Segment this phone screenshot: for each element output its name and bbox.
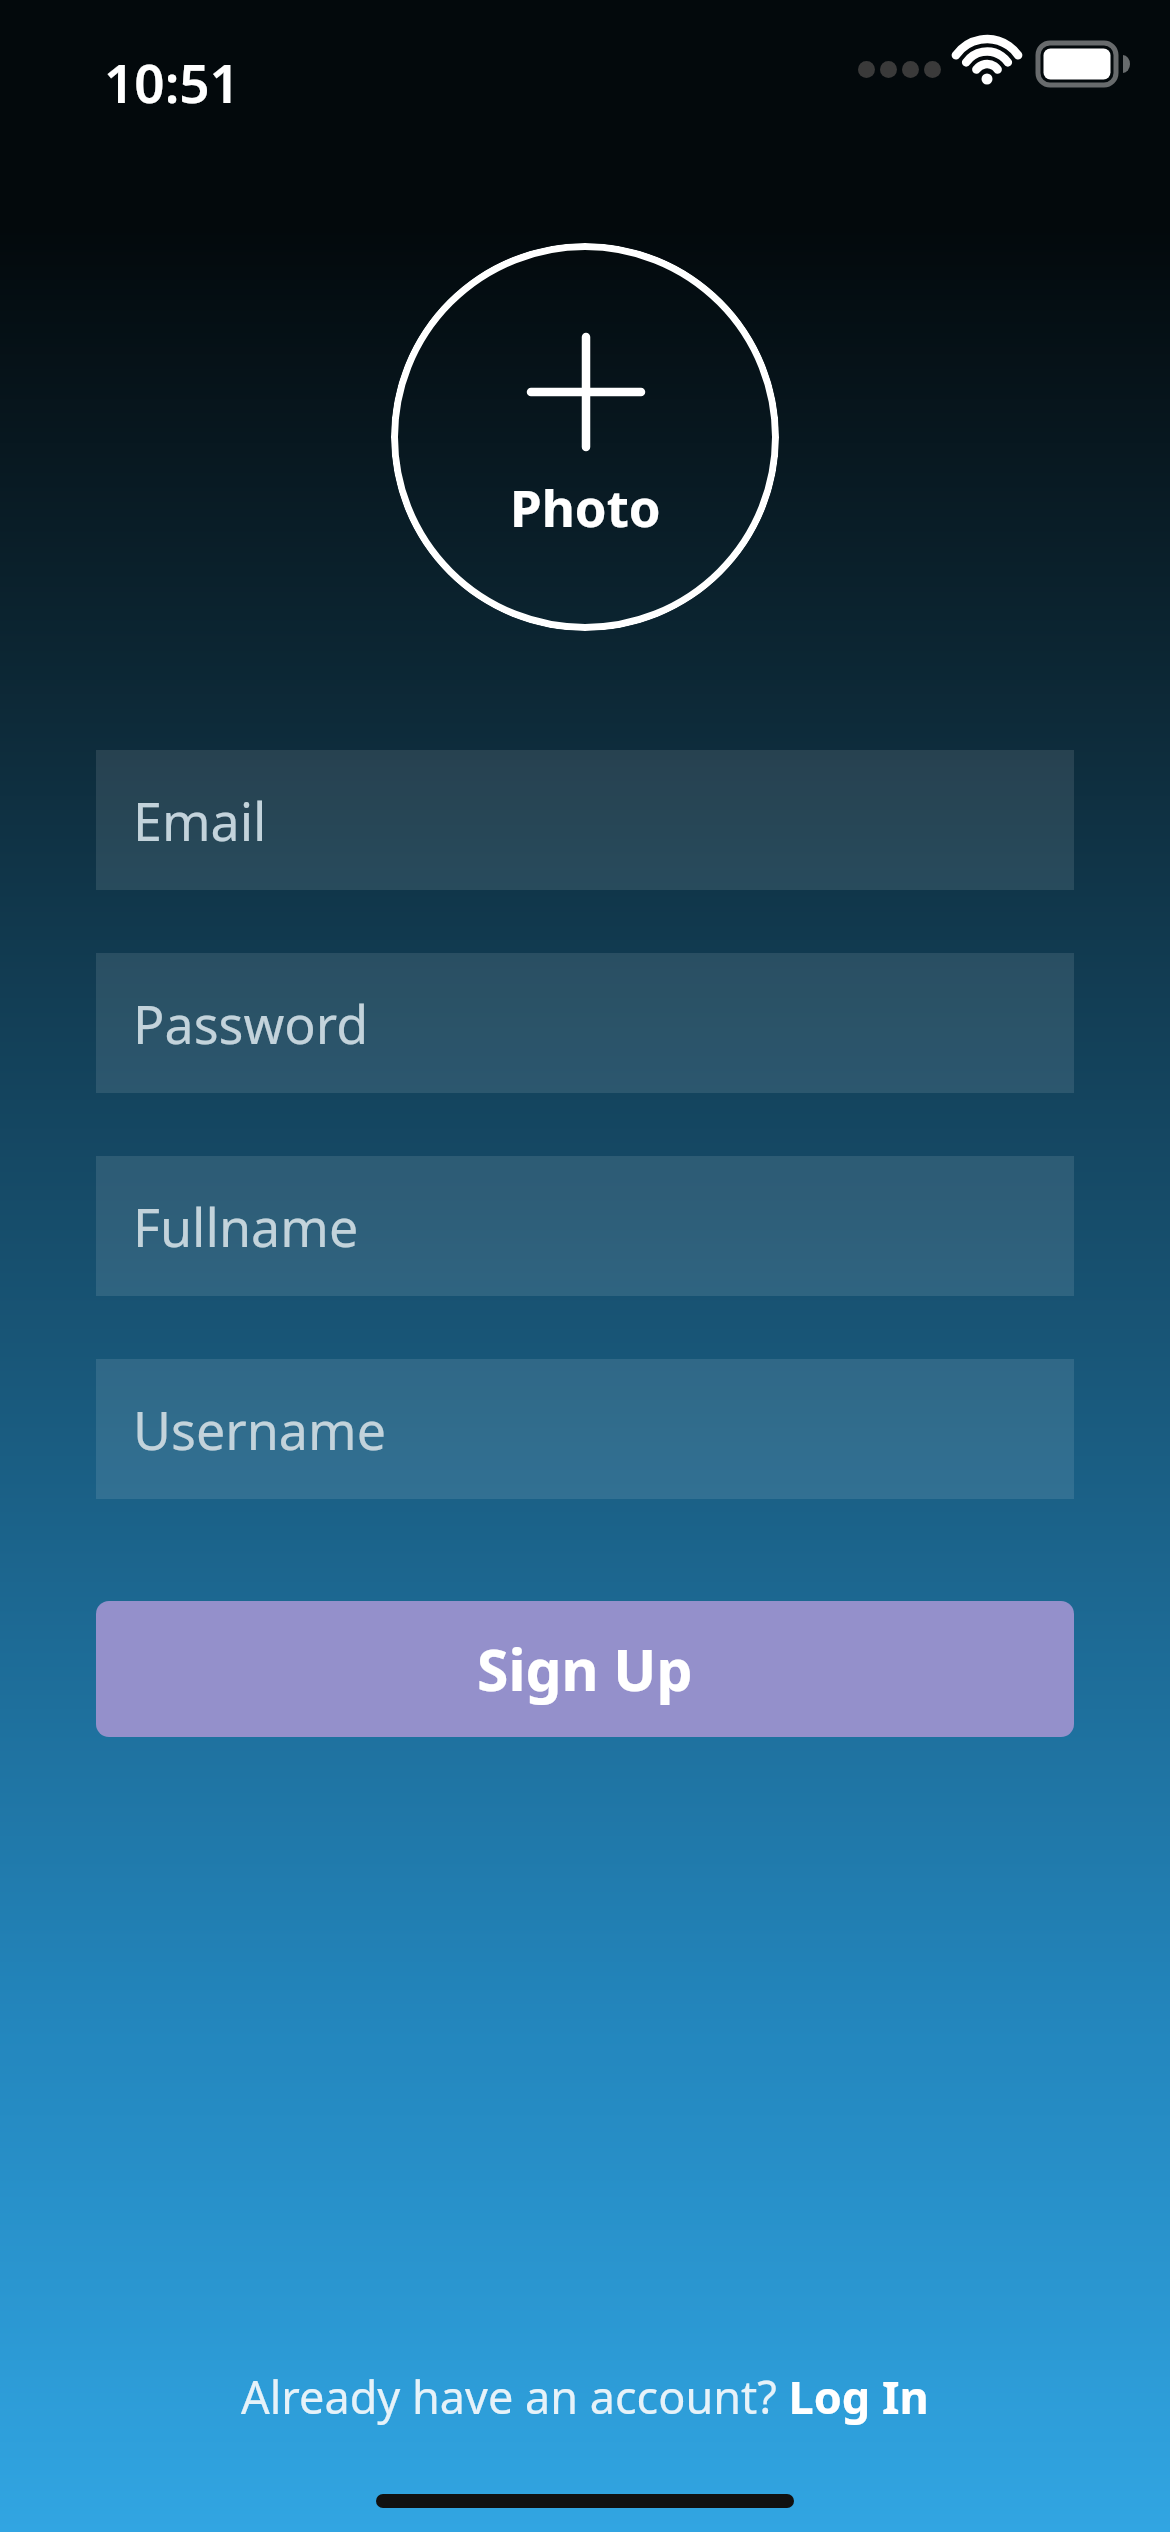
staticText: 10:51 [104,46,240,118]
staticText: Password [133,988,369,1059]
button[interactable]: Password [96,953,1074,1093]
button[interactable]: Email [96,750,1074,890]
button[interactable]: Username [96,1359,1074,1499]
button[interactable]: Already have an account? Log In [0,2350,1170,2442]
button[interactable]: Add photo [391,243,779,631]
staticText: Username [133,1394,386,1465]
staticText: Photo [510,472,661,541]
staticText: Fullname [133,1191,359,1262]
staticText: Email [133,785,267,856]
button[interactable]: Sign Up [96,1601,1074,1737]
staticText: Sign Up [477,1630,693,1708]
button[interactable]: Fullname [96,1156,1074,1296]
staticText: Already have an account? Log In [241,2366,929,2427]
